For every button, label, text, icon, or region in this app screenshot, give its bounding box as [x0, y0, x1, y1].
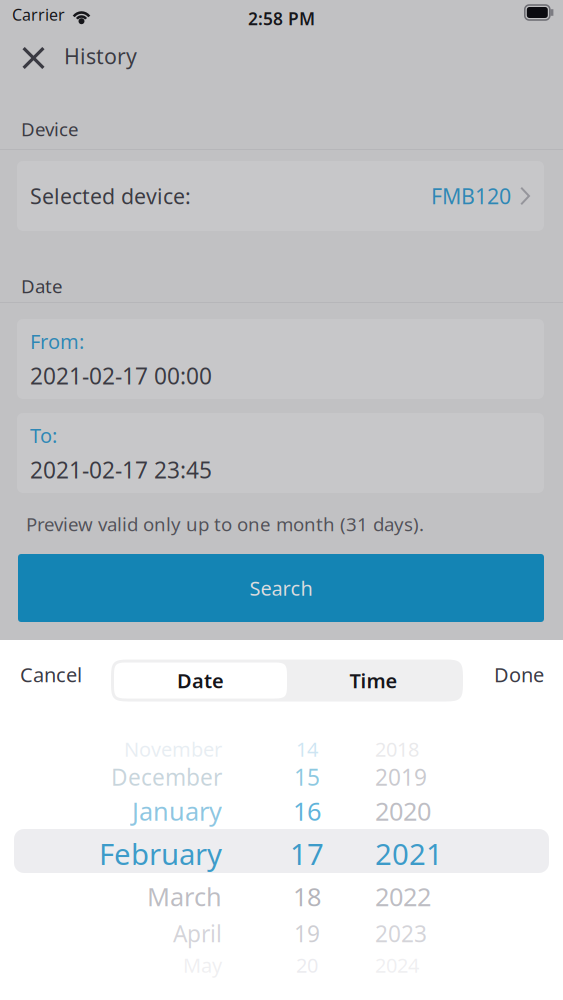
staticText: November [124, 736, 222, 762]
staticText: From: [30, 328, 84, 355]
staticText: History [64, 42, 137, 70]
staticText: 19 [294, 918, 320, 948]
staticText: Date [177, 667, 224, 694]
staticText: 2020 [375, 794, 431, 828]
staticText: 14 [296, 736, 318, 762]
staticText: 2021-02-17 00:00 [30, 361, 212, 391]
staticText: Preview valid only up to one month (31 d… [26, 512, 424, 536]
staticText: Date [21, 274, 63, 298]
button[interactable]: Search [18, 554, 544, 622]
button[interactable]: Time [287, 662, 460, 698]
staticText: Carrier [12, 4, 65, 25]
staticText: 2022 [375, 880, 431, 913]
staticText: Search [249, 575, 312, 601]
staticText: Cancel [20, 661, 82, 688]
staticText: March [147, 880, 222, 913]
staticText: 15 [294, 762, 320, 792]
staticText: May [183, 952, 222, 978]
staticText: 2021 [375, 834, 443, 873]
button[interactable]: Cancel [20, 653, 110, 695]
staticText: 2023 [375, 918, 427, 948]
staticText: 16 [293, 794, 321, 828]
staticText: 17 [290, 834, 324, 873]
staticText: February [99, 834, 222, 873]
button[interactable]: Close [0, 30, 64, 82]
staticText: 2021-02-17 23:45 [30, 455, 212, 485]
staticText: 20 [296, 952, 318, 978]
staticText: 2024 [375, 952, 419, 978]
staticText: 2:58 PM [248, 7, 315, 30]
staticText: April [173, 918, 222, 948]
staticText: 2018 [375, 736, 419, 762]
button[interactable]: From: [17, 319, 544, 399]
button[interactable]: To: [17, 413, 544, 493]
staticText: Done [494, 661, 544, 688]
staticText: FMB120 [431, 182, 511, 210]
staticText: Selected device: [30, 182, 191, 210]
button[interactable]: Done [464, 653, 544, 695]
staticText: January [132, 794, 222, 828]
staticText: 18 [293, 880, 321, 913]
staticText: 2019 [375, 762, 427, 792]
button[interactable]: Date [114, 662, 287, 698]
button[interactable]: Selected device: [17, 161, 544, 231]
staticText: Device [21, 117, 79, 141]
staticText: To: [30, 422, 57, 449]
staticText: Time [349, 667, 397, 694]
staticText: December [111, 762, 222, 792]
